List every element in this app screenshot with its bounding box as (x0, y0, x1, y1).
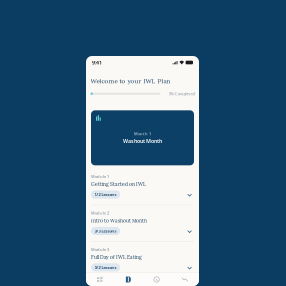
staticText: Module 2 (91, 210, 109, 216)
button[interactable] (171, 277, 199, 281)
button[interactable]: Module 1 (86, 169, 199, 205)
staticText: Full Day of IWL Eating (91, 254, 142, 260)
staticText: Intro to Washout Month (91, 218, 147, 224)
staticText: Module 1 (91, 174, 109, 179)
button[interactable] (86, 277, 114, 282)
staticText: Welcome to your IWL Plan (90, 77, 170, 85)
staticText: Month 1 (134, 131, 151, 136)
button[interactable] (114, 276, 142, 282)
button[interactable] (142, 276, 171, 282)
staticText: 0% Completed (168, 91, 194, 96)
staticText: Washout Month (123, 137, 162, 144)
staticText: 0/3 Lessons (95, 228, 117, 234)
button[interactable]: Module 2 (86, 205, 199, 241)
staticText: 1/2 Lessons (95, 192, 117, 197)
staticText: 9:41 (92, 59, 102, 66)
button[interactable]: Module 3 (86, 242, 199, 278)
staticText: 0/2 Lessons (95, 265, 117, 270)
staticText: Module 3 (91, 247, 109, 252)
staticText: Getting Started on IWL (91, 181, 146, 187)
